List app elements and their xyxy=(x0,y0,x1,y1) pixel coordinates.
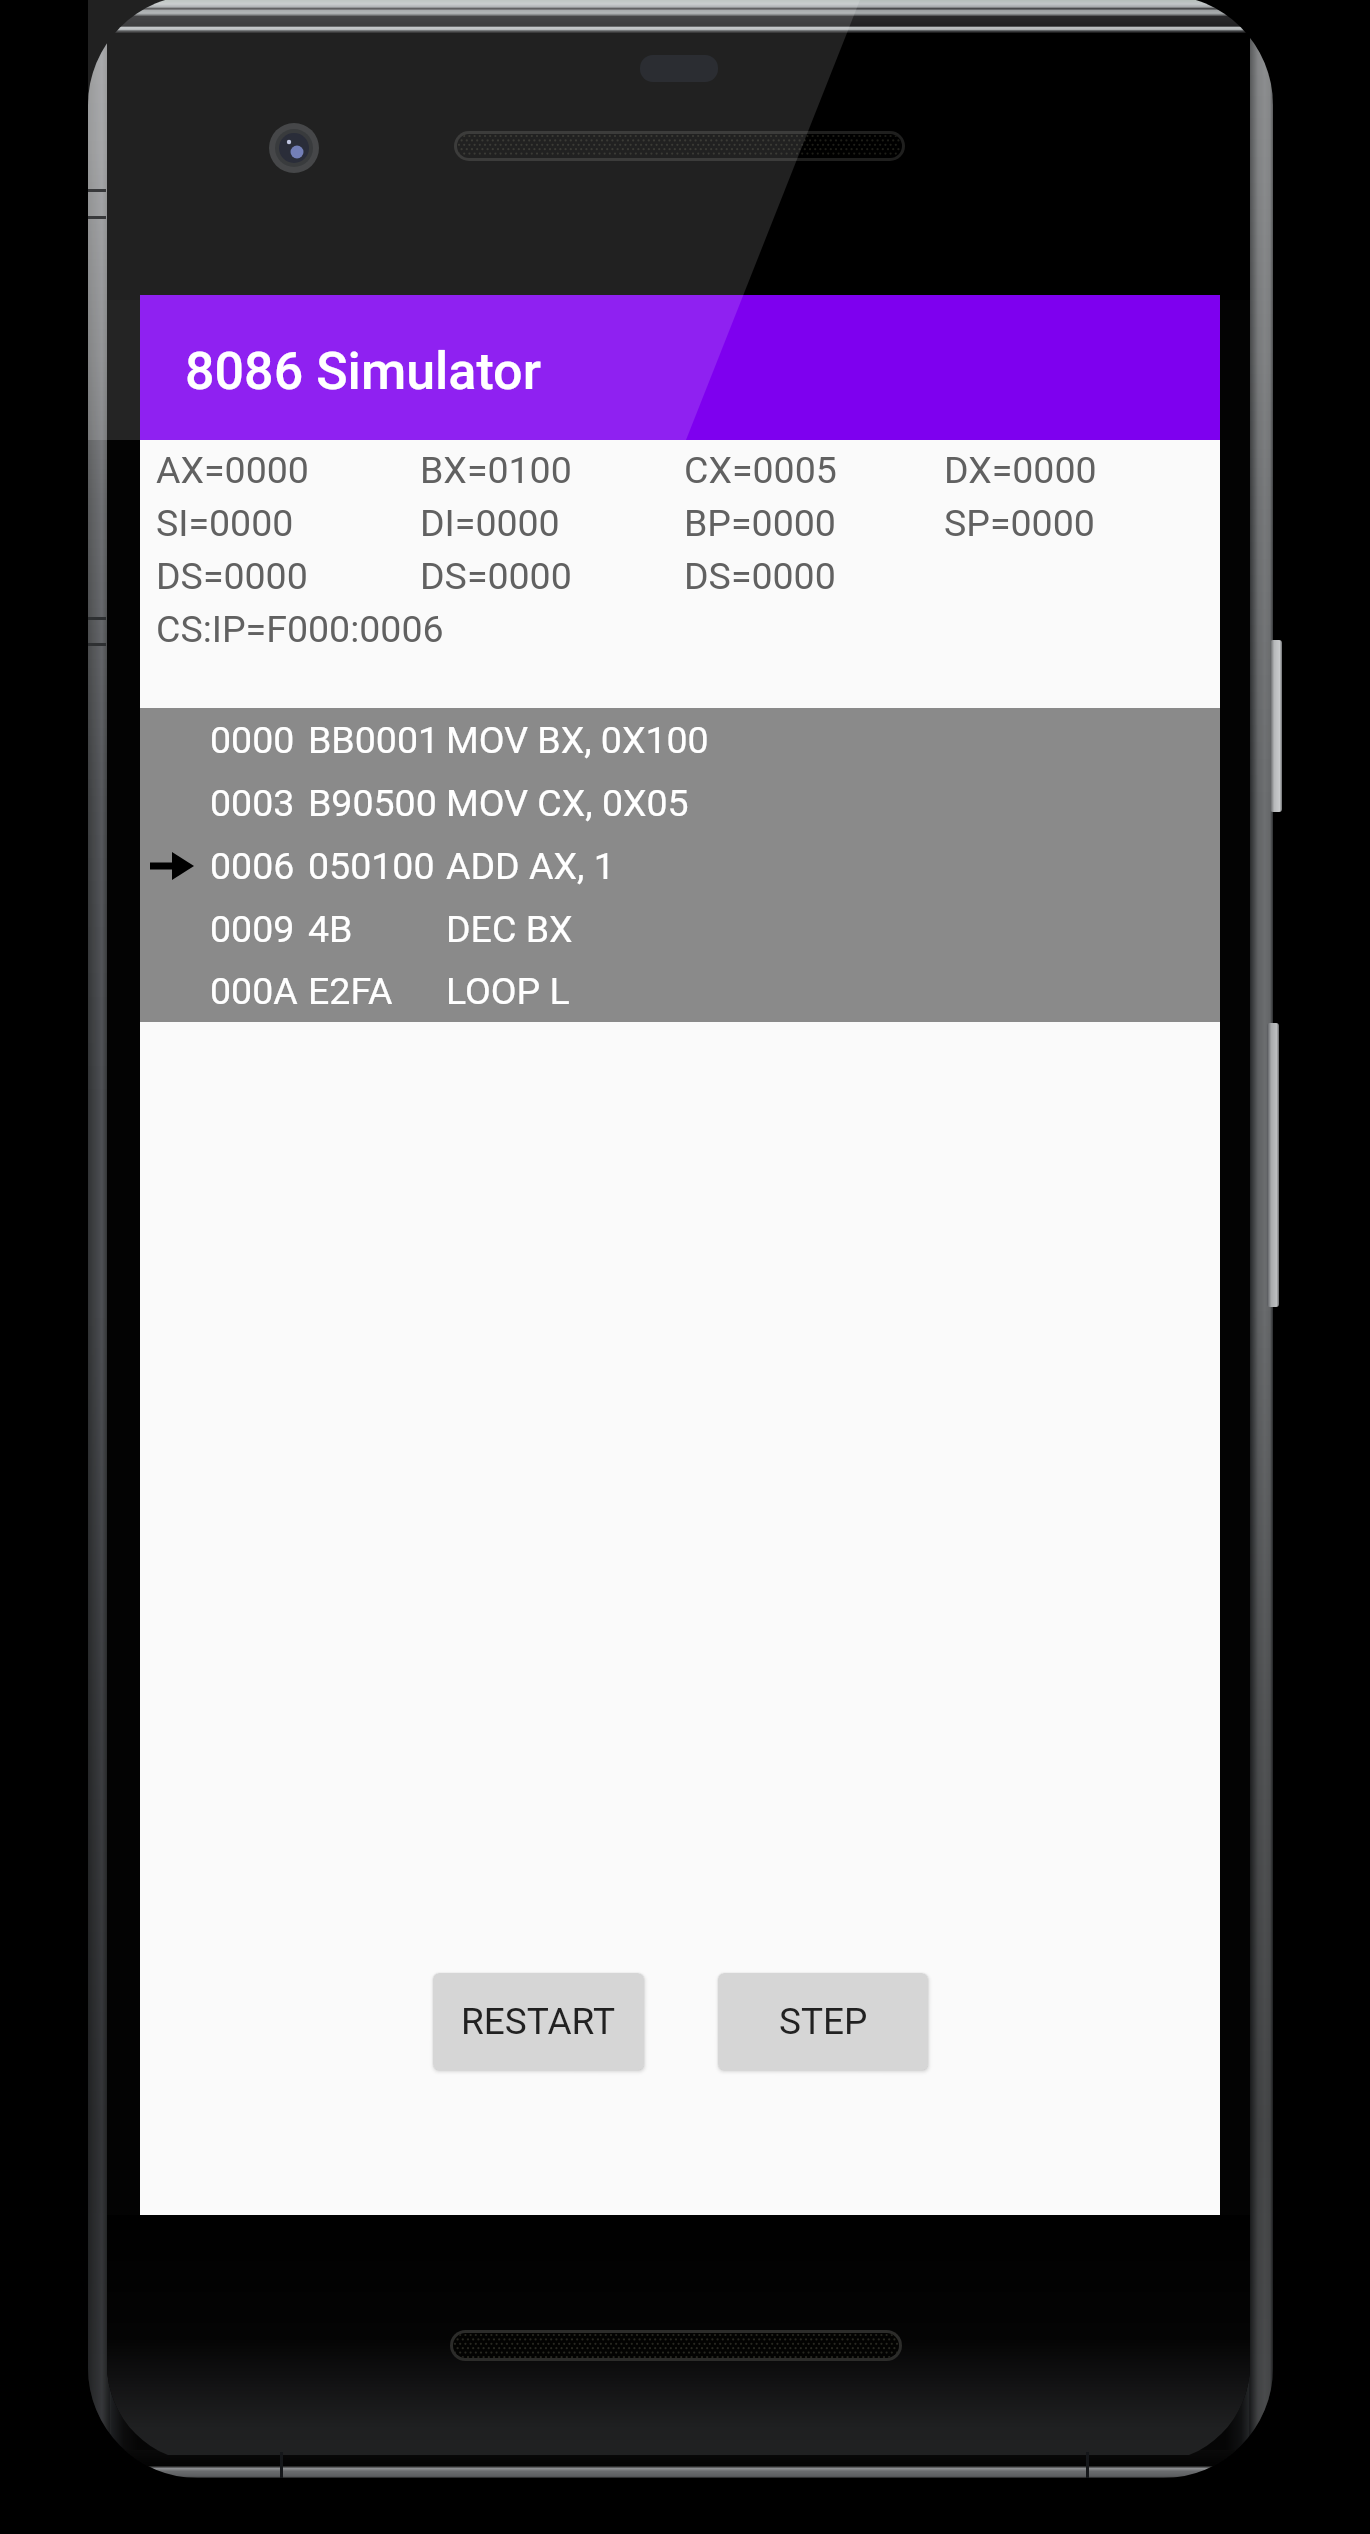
staticText: 050100 xyxy=(308,844,435,888)
staticText: CX=0005 xyxy=(684,448,837,492)
staticText: LOOP L xyxy=(446,969,570,1013)
staticText: ADD AX, 1 xyxy=(446,844,615,888)
staticText: MOV BX, 0X100 xyxy=(446,718,709,762)
staticText: 0009 xyxy=(210,907,295,951)
staticText: SP=0000 xyxy=(944,501,1095,545)
staticText: 4B xyxy=(308,907,353,951)
staticText: BX=0100 xyxy=(420,448,572,492)
staticText: SI=0000 xyxy=(156,501,294,545)
staticText: BP=0000 xyxy=(684,501,836,545)
staticText: 000A xyxy=(210,969,298,1013)
staticText: DS=0000 xyxy=(420,554,572,598)
staticText: AX=0000 xyxy=(156,448,309,492)
staticText: MOV CX, 0X05 xyxy=(446,781,689,825)
other: Current instruction xyxy=(150,851,194,881)
staticText: BB0001 xyxy=(308,718,440,762)
staticText: STEP xyxy=(779,2000,868,2043)
button[interactable]: STEP xyxy=(718,1973,928,2070)
staticText: CS:IP=F000:0006 xyxy=(156,607,444,651)
staticText: 0006 xyxy=(210,844,295,888)
staticText: DI=0000 xyxy=(420,501,560,545)
button[interactable]: RESTART xyxy=(433,1973,644,2070)
staticText: 8086 Simulator xyxy=(185,341,541,402)
staticText: DX=0000 xyxy=(944,448,1097,492)
staticText: DS=0000 xyxy=(684,554,836,598)
staticText: 0000 xyxy=(210,718,295,762)
staticText: 0003 xyxy=(210,781,295,825)
staticText: DS=0000 xyxy=(156,554,308,598)
staticText: E2FA xyxy=(308,969,393,1013)
staticText: RESTART xyxy=(461,2000,616,2043)
staticText: B90500 xyxy=(308,781,437,825)
staticText: DEC BX xyxy=(446,907,573,951)
